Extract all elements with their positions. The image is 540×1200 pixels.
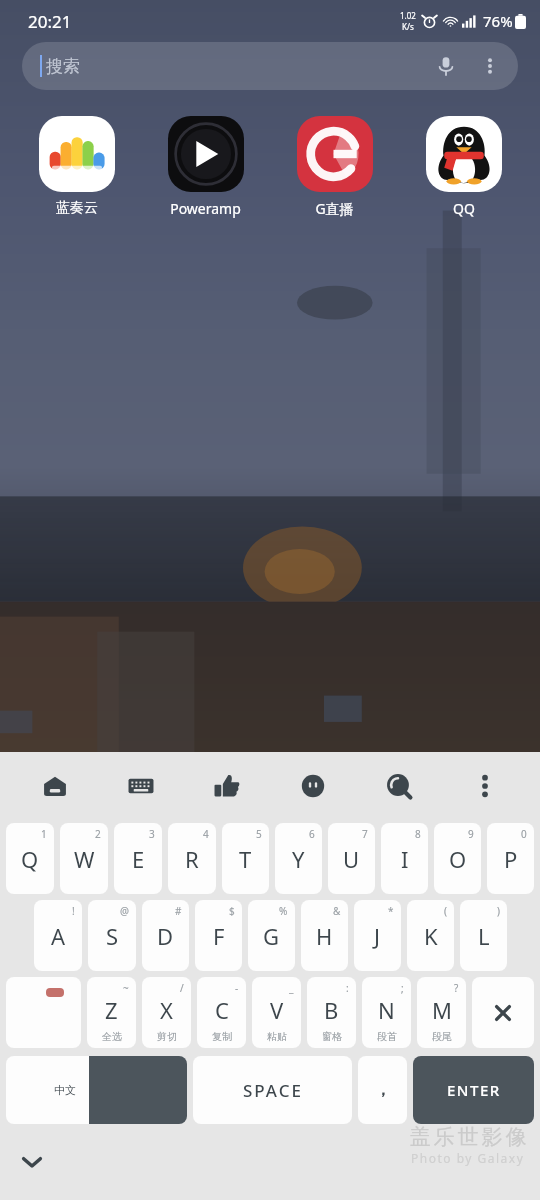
button[interactable]: 4	[168, 823, 216, 894]
button[interactable]: 7	[328, 823, 375, 894]
staticText: (	[444, 904, 447, 918]
button[interactable]: 8	[381, 823, 428, 894]
button[interactable]: Voice search	[426, 46, 466, 86]
button[interactable]: _	[252, 977, 301, 1048]
button[interactable]: %	[248, 900, 295, 971]
staticText: 2	[95, 827, 101, 841]
button[interactable]: /	[142, 977, 191, 1048]
button[interactable]: 9	[434, 823, 481, 894]
staticText: Poweramp	[170, 199, 241, 218]
button[interactable]: ，	[358, 1056, 407, 1124]
staticText: S	[106, 921, 119, 951]
staticText: 1	[41, 827, 47, 841]
staticText: 8	[415, 827, 421, 841]
button[interactable]: QQ	[399, 112, 528, 222]
staticText: 段尾	[432, 1030, 452, 1043]
button[interactable]: Emoji	[270, 752, 356, 820]
staticText: 盖乐世影像	[408, 1124, 528, 1150]
staticText: #	[175, 904, 182, 918]
staticText: F	[213, 921, 225, 951]
staticText: I	[401, 844, 409, 874]
staticText: H	[316, 921, 333, 951]
staticText: ，	[375, 1080, 391, 1100]
button[interactable]: 1	[6, 823, 54, 894]
staticText: U	[343, 844, 360, 874]
staticText: Z	[105, 995, 118, 1025]
staticText: *	[388, 904, 394, 918]
staticText: %	[279, 904, 288, 918]
button[interactable]: !	[34, 900, 82, 971]
staticText: G直播	[315, 199, 354, 218]
staticText: /	[180, 981, 184, 995]
button[interactable]: *	[354, 900, 401, 971]
button[interactable]: ~	[87, 977, 136, 1048]
staticText: 9	[468, 827, 474, 841]
staticText: C	[215, 995, 229, 1025]
button[interactable]: 0	[487, 823, 534, 894]
button[interactable]: ENTER	[413, 1056, 534, 1124]
staticText: )	[497, 904, 500, 918]
button[interactable]: Like	[184, 752, 270, 820]
button[interactable]: 搜索	[22, 42, 518, 90]
button[interactable]: Shift	[6, 977, 81, 1048]
staticText: E	[132, 844, 145, 874]
staticText: 复制	[212, 1030, 232, 1043]
staticText: ~	[123, 981, 129, 995]
staticText: Y	[292, 844, 305, 874]
staticText: N	[378, 995, 395, 1025]
button[interactable]: (	[407, 900, 454, 971]
button[interactable]: Hide keyboard	[18, 1148, 46, 1176]
button[interactable]: 5	[222, 823, 269, 894]
staticText: X	[160, 995, 173, 1025]
button[interactable]: Switch language	[6, 1056, 187, 1124]
staticText: QQ	[453, 199, 475, 218]
button[interactable]: SPACE	[193, 1056, 352, 1124]
staticText: L	[478, 921, 490, 951]
staticText: SPACE	[243, 1079, 303, 1102]
staticText: M	[432, 995, 452, 1025]
staticText: 7	[362, 827, 368, 841]
button[interactable]: $	[195, 900, 242, 971]
staticText: -	[235, 981, 239, 995]
button[interactable]: -	[197, 977, 246, 1048]
button[interactable]: Home	[12, 752, 98, 820]
staticText: 粘贴	[267, 1030, 287, 1043]
button[interactable]: More options	[470, 46, 510, 86]
staticText: 6	[309, 827, 315, 841]
staticText: A	[51, 921, 66, 951]
staticText: Photo by Galaxy	[411, 1150, 525, 1166]
staticText: 窗格	[322, 1030, 342, 1043]
button[interactable]: )	[460, 900, 507, 971]
button[interactable]: ;	[362, 977, 411, 1048]
button[interactable]: G直播	[270, 112, 399, 222]
staticText: 5	[256, 827, 262, 841]
staticText: 段首	[377, 1030, 397, 1043]
staticText: B	[324, 995, 339, 1025]
button[interactable]: 2	[60, 823, 108, 894]
button[interactable]: #	[142, 900, 189, 971]
staticText: ?	[454, 981, 459, 995]
button[interactable]: Keyboard layout	[98, 752, 184, 820]
staticText: 中文	[54, 1083, 76, 1097]
staticText: K/s	[402, 21, 414, 32]
staticText: &	[333, 904, 341, 918]
button[interactable]: 3	[114, 823, 162, 894]
button[interactable]: &	[301, 900, 348, 971]
staticText: G	[263, 921, 280, 951]
staticText: T	[239, 844, 252, 874]
staticText: :	[346, 981, 349, 995]
staticText: Q	[21, 844, 39, 874]
button[interactable]: :	[307, 977, 356, 1048]
button[interactable]: Poweramp	[141, 112, 270, 222]
button[interactable]: More	[442, 752, 528, 820]
staticText: R	[185, 844, 199, 874]
button[interactable]: Search	[356, 752, 442, 820]
button[interactable]: 6	[275, 823, 322, 894]
button[interactable]: 蓝奏云	[12, 112, 141, 221]
staticText: W	[74, 844, 95, 874]
button[interactable]: @	[88, 900, 136, 971]
staticText: 1.02	[400, 10, 416, 21]
staticText: 4	[203, 827, 209, 841]
button[interactable]: Backspace	[472, 977, 534, 1048]
button[interactable]: ?	[417, 977, 466, 1048]
